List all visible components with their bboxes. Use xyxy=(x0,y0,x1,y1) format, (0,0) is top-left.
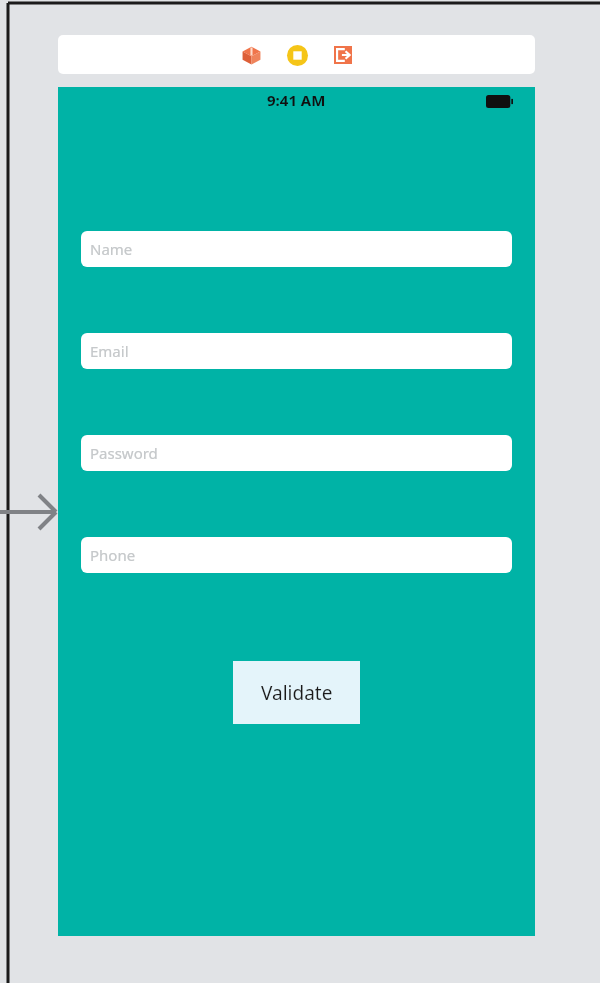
button[interactable]: Stop xyxy=(280,38,314,72)
button[interactable]: Email xyxy=(81,333,512,369)
button[interactable]: Build xyxy=(234,38,268,72)
staticText: Name xyxy=(90,239,133,259)
button[interactable]: Export xyxy=(326,38,360,72)
button[interactable]: Name xyxy=(81,231,512,267)
staticText: Validate xyxy=(261,680,333,706)
staticText: Email xyxy=(90,341,129,361)
staticText: Password xyxy=(90,443,158,463)
button[interactable]: Password xyxy=(81,435,512,471)
button[interactable]: Phone xyxy=(81,537,512,573)
staticText: 9:41 AM xyxy=(267,90,326,110)
other: Next step xyxy=(0,494,58,530)
button[interactable]: Validate xyxy=(233,661,360,724)
staticText: Phone xyxy=(90,545,136,565)
